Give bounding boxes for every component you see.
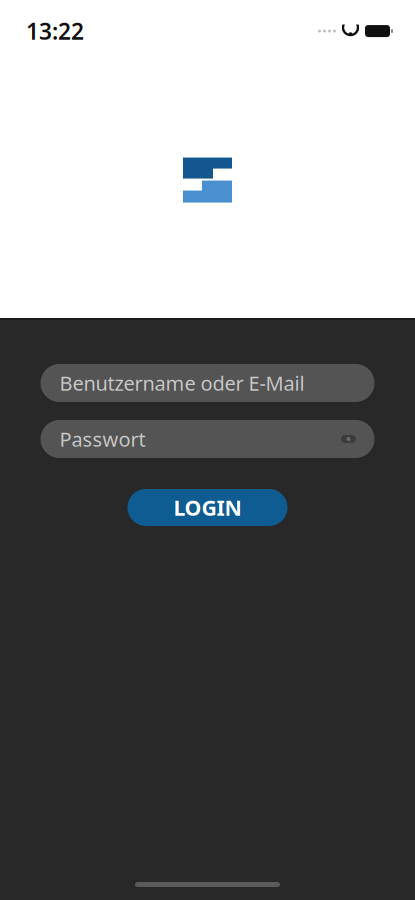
button[interactable]: Passwort bbox=[40, 420, 374, 458]
staticText: 13:22 bbox=[26, 16, 84, 46]
button[interactable]: LOGIN bbox=[127, 489, 287, 526]
button[interactable]: Benutzername oder E-Mail bbox=[40, 364, 374, 402]
staticText: Passwort bbox=[59, 426, 145, 452]
staticText: Benutzername oder E-Mail bbox=[59, 370, 304, 396]
staticText: LOGIN bbox=[173, 493, 241, 522]
